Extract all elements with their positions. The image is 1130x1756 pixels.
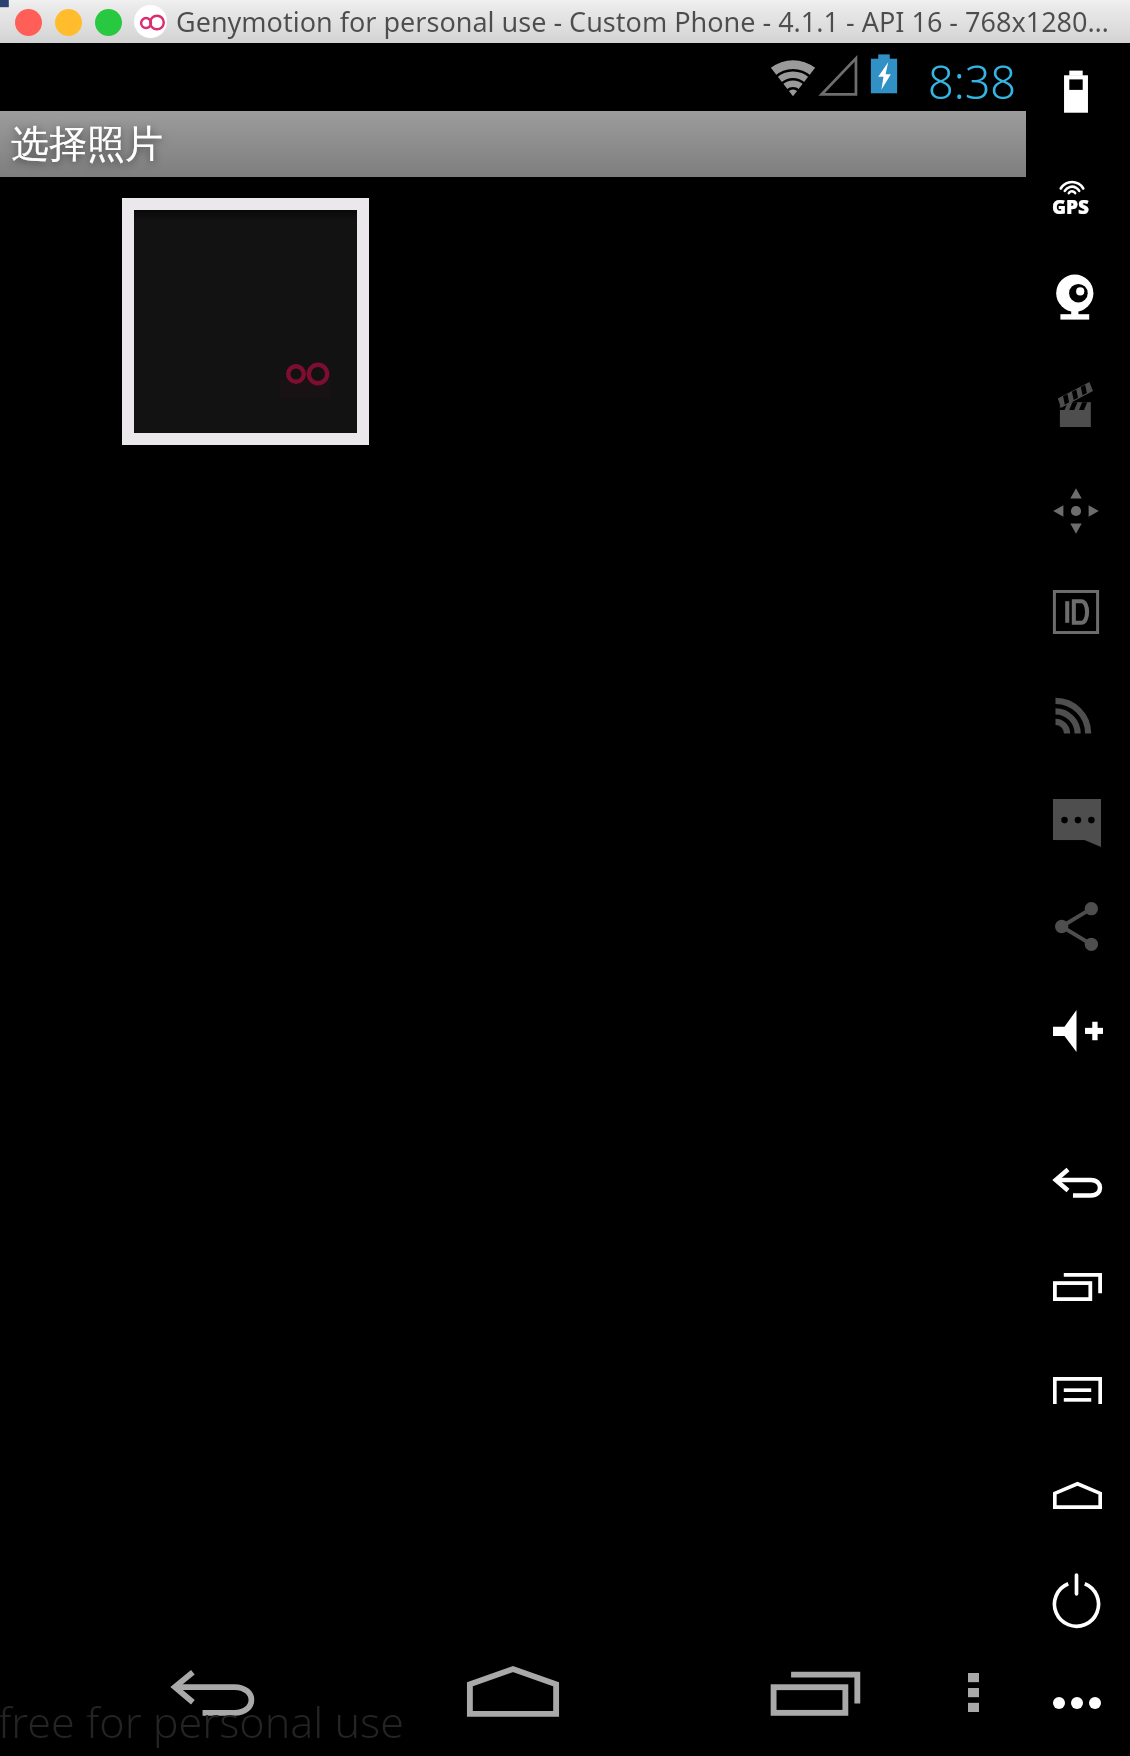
button[interactable]: Home: [1026, 1464, 1130, 1527]
staticText: 选择照片: [11, 120, 163, 168]
button[interactable]: Recent apps: [712, 1640, 918, 1748]
button[interactable]: Genymotion: [134, 5, 167, 38]
button[interactable]: Back: [110, 1640, 318, 1748]
button[interactable]: 选择照片: [0, 111, 1026, 177]
button[interactable]: SMS: [1026, 781, 1130, 865]
button[interactable]: Back: [1026, 1149, 1130, 1216]
button[interactable]: Battery: [1026, 50, 1130, 138]
staticText: free for personal use: [0, 1692, 404, 1751]
button[interactable]: More: [1026, 1679, 1130, 1727]
button[interactable]: Photo: [134, 210, 357, 433]
button[interactable]: Window control: [15, 9, 42, 36]
button[interactable]: Volume up: [1026, 992, 1130, 1070]
button[interactable]: Network: [1026, 668, 1130, 758]
button[interactable]: Video recording: [1026, 363, 1130, 445]
button[interactable]: Share: [1026, 884, 1130, 969]
button[interactable]: Menu: [1026, 1359, 1130, 1422]
button[interactable]: GPS: [1026, 156, 1130, 236]
button[interactable]: Window control: [55, 9, 82, 36]
staticText: 8:38: [928, 51, 1017, 112]
button[interactable]: Recent apps: [1026, 1255, 1130, 1319]
button[interactable]: More options: [928, 1640, 1016, 1748]
button[interactable]: Window control: [95, 9, 122, 36]
button[interactable]: Move: [1026, 464, 1130, 558]
button[interactable]: Camera: [1026, 250, 1130, 346]
staticText: Genymotion for personal use - Custom Pho…: [176, 3, 1109, 40]
button[interactable]: Power: [1026, 1555, 1130, 1643]
staticText: GPS: [1052, 194, 1090, 220]
button[interactable]: Home: [408, 1640, 618, 1748]
button[interactable]: Identifiers: [1026, 567, 1130, 657]
